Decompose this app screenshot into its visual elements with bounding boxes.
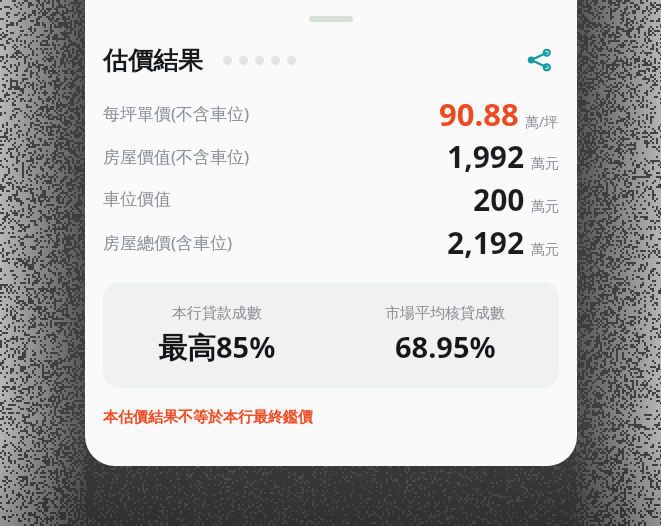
staticText: 房屋價值(不含車位) <box>103 145 250 168</box>
staticText: 最高85% <box>158 327 276 367</box>
button[interactable]: 市場平均核貸成數 <box>331 304 559 366</box>
staticText: 市場平均核貸成數 <box>385 304 505 323</box>
staticText: 200 <box>473 179 525 220</box>
staticText: 房屋總價(含車位) <box>103 231 233 254</box>
staticText: 本估價結果不等於本行最終鑑價 <box>103 408 313 427</box>
staticText: 萬元 <box>531 155 559 173</box>
staticText: 68.95% <box>395 327 496 366</box>
button[interactable]: 每坪單價(不含車位) <box>85 92 577 135</box>
button[interactable]: 房屋總價(含車位) <box>85 221 577 264</box>
staticText: 本行貸款成數 <box>172 304 262 323</box>
staticText: 萬元 <box>531 198 559 216</box>
staticText: 估價結果 <box>103 45 203 76</box>
staticText: 1,992 <box>447 136 525 177</box>
staticText: 車位價值 <box>103 189 171 210</box>
staticText: 萬/坪 <box>525 112 559 131</box>
button[interactable]: 本行貸款成數 <box>103 304 331 367</box>
button[interactable]: 車位價值 <box>85 178 577 221</box>
staticText: 90.88 <box>439 93 519 135</box>
staticText: 萬元 <box>531 241 559 259</box>
staticText: 每坪單價(不含車位) <box>103 102 250 125</box>
button[interactable]: Share <box>517 38 561 82</box>
staticText: 2,192 <box>447 222 525 263</box>
button[interactable]: 房屋價值(不含車位) <box>85 135 577 178</box>
